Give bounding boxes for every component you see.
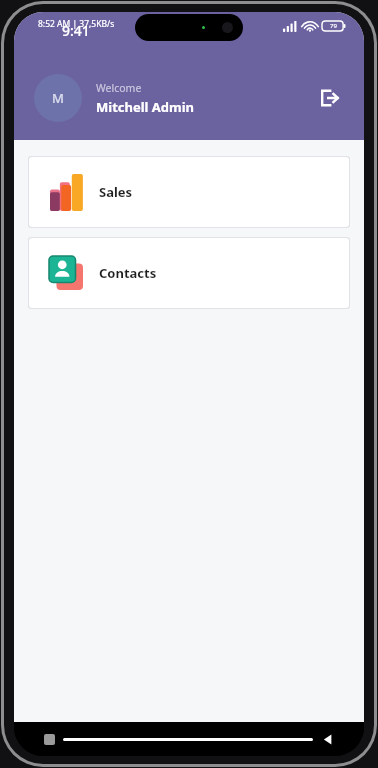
staticText: Mitchell Admin: [96, 98, 195, 116]
button[interactable]: Recents: [44, 734, 55, 745]
button[interactable]: Contacts: [28, 237, 350, 309]
staticText: Sales: [99, 183, 133, 201]
button[interactable]: Back: [321, 733, 334, 746]
button[interactable]: Sales: [28, 156, 350, 228]
staticText: 8:52 AM | 37,5KB/s: [38, 18, 115, 30]
staticText: Contacts: [99, 264, 157, 282]
button[interactable]: Home: [63, 738, 313, 741]
staticText: Welcome: [96, 81, 142, 95]
staticText: M: [52, 89, 64, 107]
staticText: 9:41: [62, 21, 90, 40]
staticText: 79: [330, 22, 337, 30]
button[interactable]: Log out: [312, 81, 346, 115]
